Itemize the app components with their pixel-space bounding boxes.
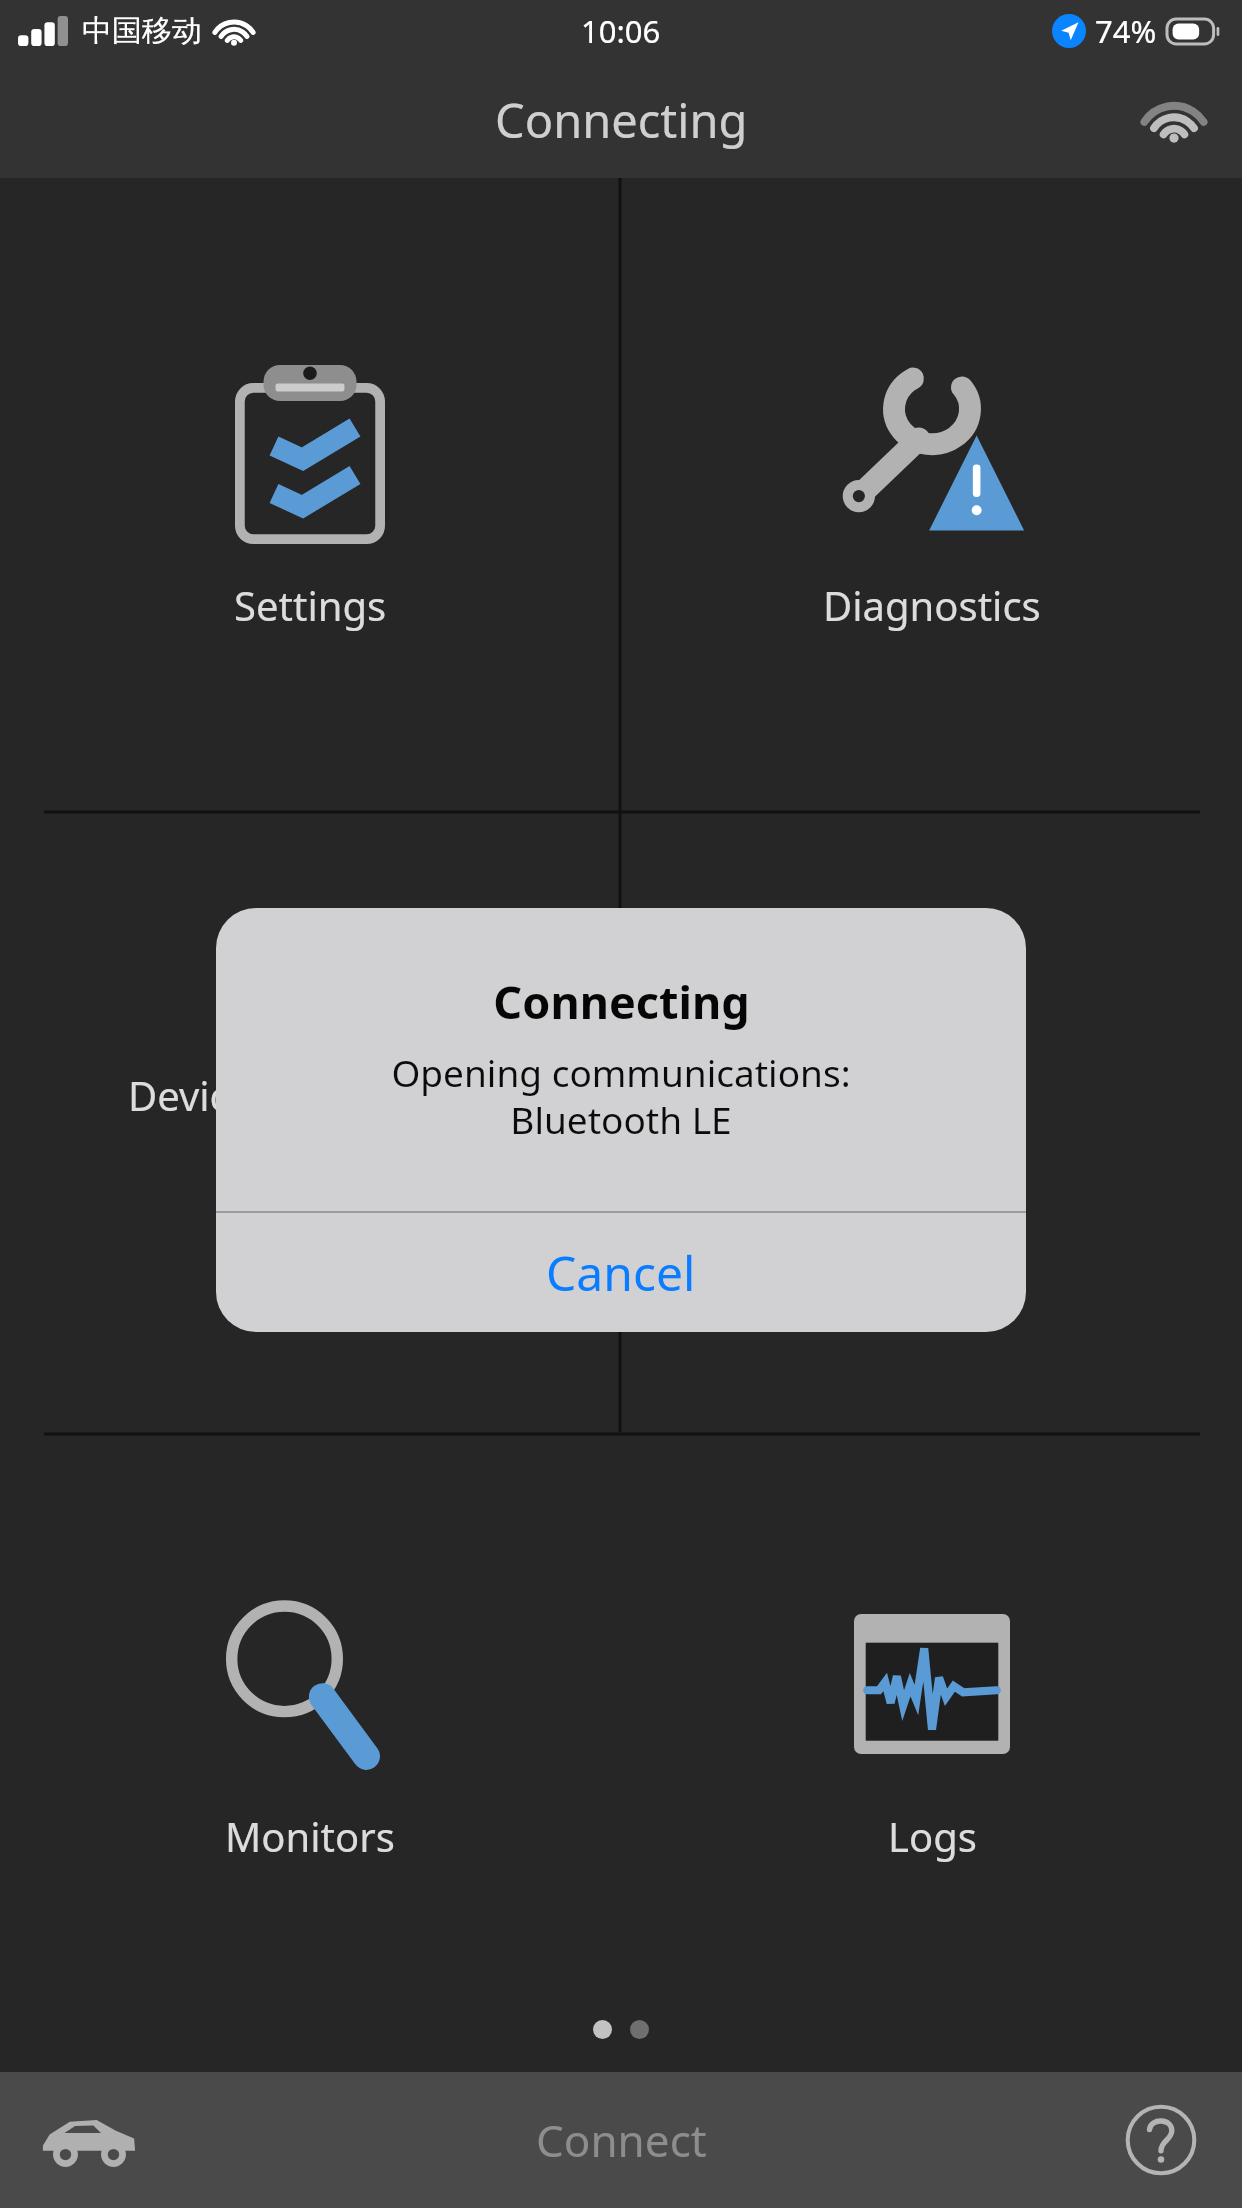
staticText: Device Info [128, 1068, 338, 1122]
button[interactable]: Help [1106, 2085, 1216, 2195]
staticText: Settings [234, 578, 387, 632]
staticText: Connect [536, 2110, 707, 2170]
staticText: Monitors [225, 1809, 395, 1863]
button[interactable] [622, 814, 1242, 1432]
staticText: 10:06 [581, 10, 661, 52]
button[interactable]: Vehicle [24, 2075, 154, 2205]
staticText: Opening communications: Bluetooth LE [391, 1047, 851, 1145]
button[interactable]: Settings [0, 178, 620, 812]
button[interactable]: Connect [496, 2094, 747, 2186]
button[interactable]: Logs [622, 1436, 1242, 2016]
staticText: Connecting [493, 971, 750, 1032]
staticText: Cancel [546, 1240, 696, 1305]
button[interactable]: Cancel [216, 1213, 1026, 1332]
staticText: Logs [888, 1809, 977, 1863]
staticText: 中国移动 [82, 12, 202, 50]
staticText: Diagnostics [823, 578, 1041, 632]
button[interactable]: Diagnostics [622, 178, 1242, 812]
staticText: Connecting [495, 88, 748, 152]
button[interactable]: Device Info [0, 814, 620, 1432]
button[interactable]: Monitors [0, 1436, 620, 2016]
staticText: 74% [1095, 10, 1157, 52]
button[interactable]: Connection status [1132, 78, 1216, 162]
